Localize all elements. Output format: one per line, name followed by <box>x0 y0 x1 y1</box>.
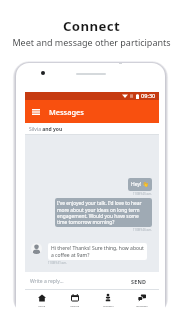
staticText: Home <box>38 304 46 307</box>
staticText: Messages <box>136 304 148 307</box>
button[interactable]: Agenda <box>58 290 91 310</box>
staticText: Messages <box>49 107 84 117</box>
staticText: 11/08 9:26 a.m. <box>133 228 152 232</box>
staticText: 11/08 9:25 a.m. <box>133 192 152 196</box>
staticText: Connect <box>0 17 183 35</box>
button[interactable]: Messages <box>125 290 159 310</box>
staticText: Agenda <box>70 304 80 307</box>
staticText: Hi there! Thanks! Sure thing, how about … <box>51 245 144 258</box>
button[interactable]: SEND <box>129 275 149 288</box>
staticText: Meet and message other participants <box>0 36 183 48</box>
button[interactable]: Speakers <box>91 290 125 310</box>
button[interactable]: Open navigation menu <box>28 104 44 120</box>
staticText: 11/08 9:31 a.m. <box>48 261 67 265</box>
staticText: Hey! 👋 <box>131 181 149 188</box>
staticText: SEND <box>131 278 147 285</box>
button[interactable]: Home <box>25 290 58 310</box>
staticText: Write a reply... <box>30 278 64 285</box>
staticText: I've enjoyed your talk. I'd love to hear… <box>57 200 150 225</box>
staticText: Silvia and you <box>29 126 63 133</box>
staticText: 09:30 <box>141 92 156 100</box>
staticText: Speakers <box>103 304 114 307</box>
